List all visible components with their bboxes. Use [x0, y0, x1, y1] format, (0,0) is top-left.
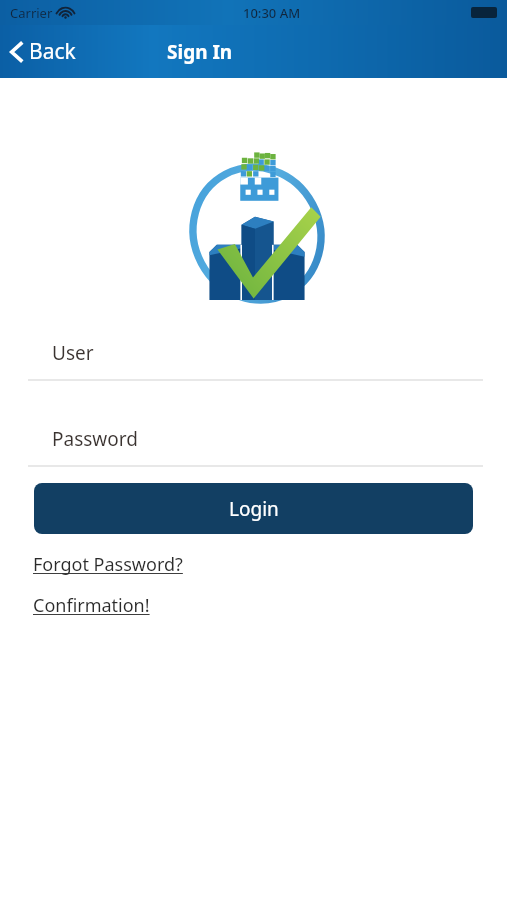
button[interactable]: Back: [0, 31, 86, 72]
staticText: Password: [52, 426, 138, 452]
button[interactable]: Login: [34, 483, 473, 534]
staticText: Back: [29, 37, 76, 66]
button[interactable]: User: [0, 336, 507, 381]
button[interactable]: Password: [0, 422, 507, 467]
staticText: 10:30 AM: [243, 4, 301, 22]
staticText: User: [52, 340, 94, 366]
staticText: Confirmation!: [33, 593, 150, 618]
staticText: Sign In: [167, 39, 233, 65]
other: App logo: [190, 144, 324, 304]
staticText: Forgot Password?: [33, 552, 183, 577]
staticText: Login: [229, 496, 279, 522]
button[interactable]: Confirmation!: [33, 593, 150, 618]
button[interactable]: Forgot Password?: [33, 552, 183, 577]
staticText: Carrier: [10, 4, 53, 22]
